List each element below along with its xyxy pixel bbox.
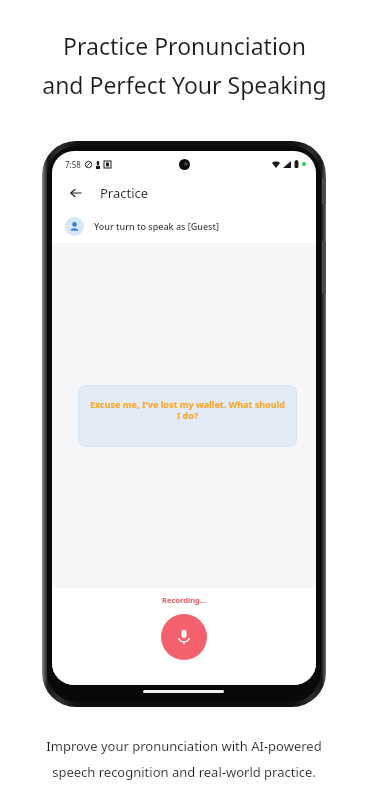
button[interactable]: Excuse me, I've lost my wallet. What sho… [78, 385, 297, 447]
staticText: and Perfect Your Speaking [42, 69, 327, 100]
staticText: Improve your pronunciation with AI-power… [46, 737, 322, 755]
staticText: Your turn to speak as [Guest] [94, 220, 219, 232]
staticText: speech recognition and real-world practi… [52, 763, 316, 781]
staticText: Excuse me, I've lost my wallet. What sho… [88, 398, 287, 422]
button[interactable]: Record [161, 614, 207, 660]
staticText: Practice Pronunciation [63, 30, 306, 61]
staticText: Recording... [162, 595, 207, 605]
staticText: Practice [100, 184, 149, 202]
staticText: 7:58 [65, 159, 81, 170]
button[interactable]: Back [64, 181, 88, 205]
